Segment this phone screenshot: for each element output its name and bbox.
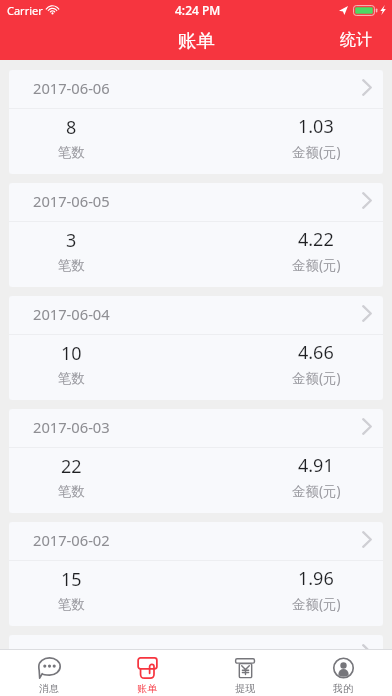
- staticText: 金额(元): [292, 369, 341, 387]
- staticText: 2017-06-03: [33, 417, 110, 437]
- staticText: 金额(元): [292, 482, 341, 500]
- staticText: 金额(元): [292, 595, 341, 613]
- staticText: 笔数: [58, 483, 85, 500]
- staticText: 金额(元): [292, 143, 341, 161]
- staticText: 笔数: [58, 257, 85, 274]
- button[interactable]: 账单: [98, 650, 196, 696]
- button[interactable]: 统计: [324, 20, 392, 60]
- button[interactable]: 消息: [0, 650, 98, 696]
- staticText: 消息: [39, 682, 59, 695]
- staticText: 提现: [235, 682, 255, 695]
- staticText: 4:24 PM: [175, 2, 221, 18]
- staticText: 账单: [178, 29, 215, 52]
- staticText: 1.03: [298, 114, 334, 139]
- staticText: 15: [61, 567, 82, 592]
- staticText: 10: [61, 341, 82, 366]
- staticText: 2017-06-05: [33, 191, 110, 211]
- staticText: 1.96: [298, 566, 334, 591]
- button[interactable]: 账单 2017-06-02: [9, 522, 383, 626]
- staticText: 2017-06-06: [33, 78, 110, 98]
- staticText: 账单: [137, 682, 157, 695]
- staticText: 3: [66, 228, 77, 253]
- button[interactable]: 账单 2017-06-06: [9, 70, 383, 174]
- staticText: 统计: [340, 30, 372, 50]
- staticText: 我的: [333, 682, 353, 695]
- staticText: Carrier: [7, 3, 43, 18]
- staticText: 4.66: [298, 340, 334, 365]
- staticText: 2017-06-04: [33, 304, 110, 324]
- staticText: 笔数: [58, 596, 85, 613]
- button[interactable]: 账单 2017-06-04: [9, 296, 383, 400]
- button[interactable]: 提现: [196, 650, 294, 696]
- staticText: 8: [66, 115, 77, 140]
- staticText: 22: [61, 454, 82, 479]
- button[interactable]: 账单 2017-06-03: [9, 409, 383, 513]
- button[interactable]: 账单 2017-06-05: [9, 183, 383, 287]
- staticText: 2017-06-02: [33, 530, 110, 550]
- staticText: 4.22: [298, 227, 334, 252]
- button[interactable]: 我的: [294, 650, 392, 696]
- staticText: 金额(元): [292, 256, 341, 274]
- staticText: 4.91: [298, 453, 334, 478]
- staticText: 笔数: [58, 370, 85, 387]
- staticText: 笔数: [58, 144, 85, 161]
